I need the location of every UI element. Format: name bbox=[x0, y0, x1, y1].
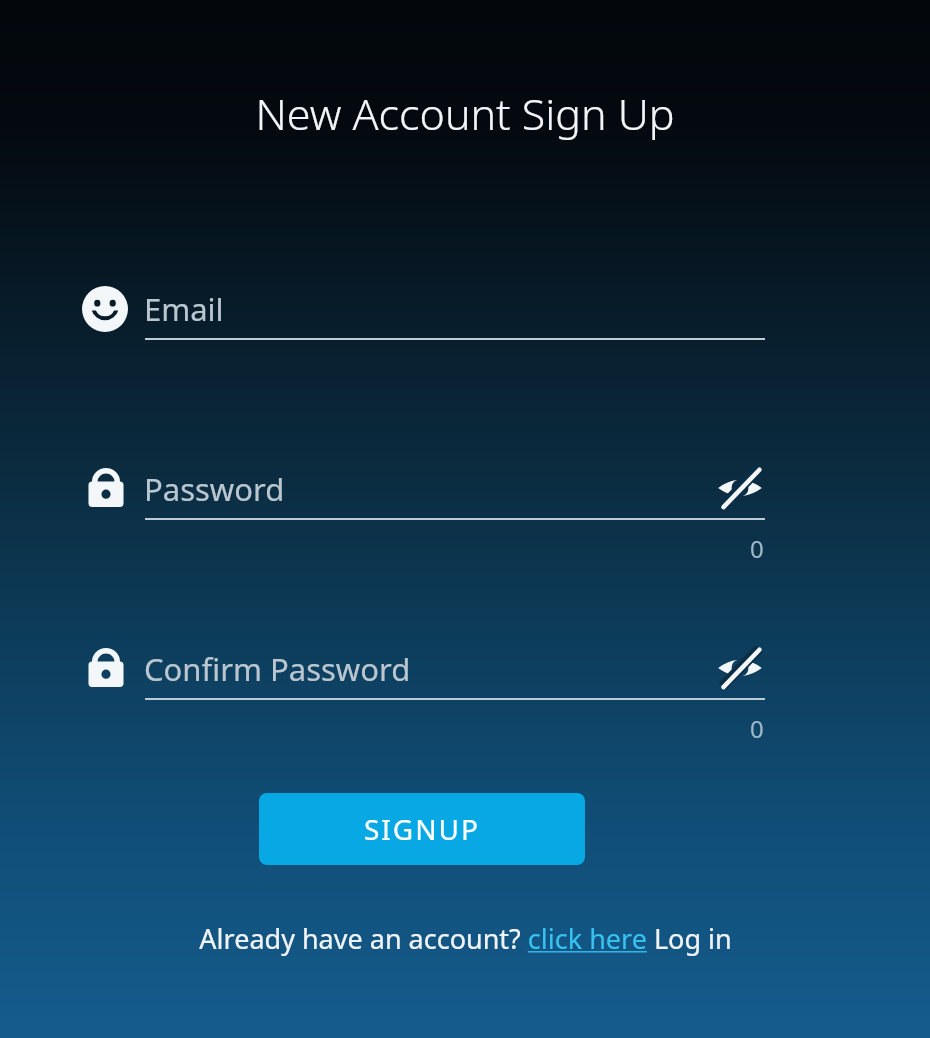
staticText: Email bbox=[144, 288, 224, 330]
other: Email bbox=[82, 286, 128, 332]
other: Confirm password lock bbox=[82, 642, 130, 690]
staticText: SIGNUP bbox=[364, 810, 480, 848]
staticText: Confirm Password bbox=[144, 648, 411, 690]
button[interactable]: Show password bbox=[708, 456, 772, 520]
button[interactable]: Email bbox=[78, 272, 778, 352]
other: Password lock bbox=[82, 462, 130, 510]
staticText: 0 bbox=[750, 532, 764, 565]
staticText: Already have an account? click here Log … bbox=[199, 920, 732, 957]
button[interactable]: SIGNUP bbox=[259, 793, 585, 865]
button[interactable]: Show confirm password bbox=[708, 636, 772, 700]
button[interactable]: Already have an account? click here Log … bbox=[0, 915, 930, 961]
staticText: New Account Sign Up bbox=[0, 84, 930, 143]
staticText: 0 bbox=[750, 712, 764, 745]
staticText: Password bbox=[144, 468, 285, 510]
